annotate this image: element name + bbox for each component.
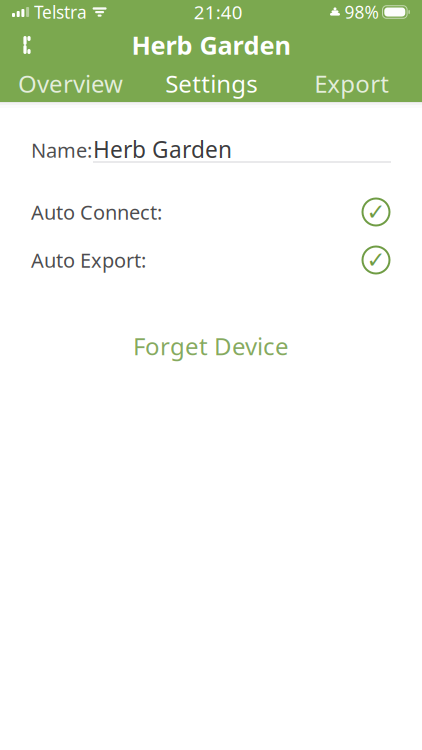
staticText: Auto Export: [31,247,146,273]
button[interactable]: Settings [141,64,281,106]
staticText: ✓ [366,247,385,273]
staticText: ✓ [366,199,385,225]
staticText: Herb Garden [131,28,290,62]
staticText: Settings [165,68,257,99]
button[interactable]: Auto Export: [0,236,422,284]
staticText: 98% [344,0,378,23]
staticText: Name: [31,137,92,163]
staticText: Export [314,68,389,99]
button[interactable]: Back [0,26,54,64]
staticText: 21:40 [194,0,243,24]
button[interactable]: Overview [0,64,141,106]
button[interactable]: Auto Connect: [0,188,422,236]
button[interactable]: Export [281,64,422,106]
staticText: Telstra [34,0,87,23]
staticText: Herb Garden [93,134,232,164]
staticText: Auto Connect: [31,199,162,225]
staticText: Overview [18,68,123,99]
button[interactable]: Forget Device [0,328,422,364]
staticText: Forget Device [133,330,289,362]
